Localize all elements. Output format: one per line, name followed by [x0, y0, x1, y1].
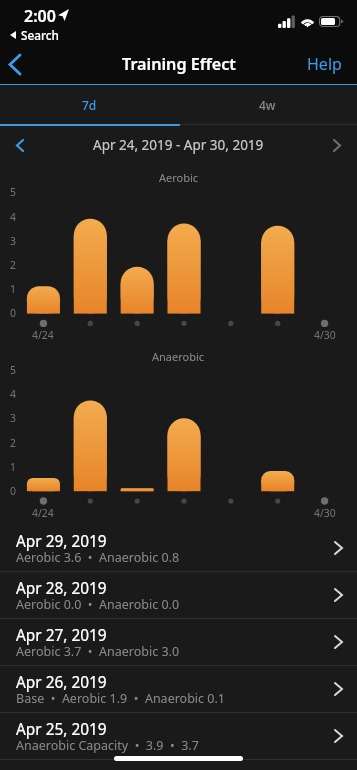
- staticText: 2:00: [24, 5, 56, 27]
- staticText: 4/30: [314, 506, 336, 520]
- staticText: 4/30: [314, 328, 336, 342]
- staticText: 4: [10, 210, 16, 224]
- staticText: Search: [21, 27, 59, 43]
- staticText: 4w: [259, 97, 276, 113]
- staticText: Apr 25, 2019: [16, 719, 107, 740]
- staticText: Aerobic 3.7 • Anaerobic 3.0: [16, 643, 180, 660]
- staticText: 2: [10, 258, 16, 272]
- staticText: Base • Aerobic 1.9 • Anaerobic 0.1: [16, 690, 225, 707]
- staticText: Apr 29, 2019: [16, 531, 107, 552]
- staticText: Training Effect: [122, 53, 236, 75]
- staticText: Help: [307, 53, 342, 75]
- staticText: Apr 28, 2019: [16, 578, 107, 599]
- button[interactable]: Apr 26, 2019: [0, 666, 357, 713]
- staticText: 1: [10, 282, 16, 296]
- button[interactable]: Back: [0, 44, 44, 84]
- staticText: Aerobic: [159, 170, 199, 185]
- staticText: 2: [10, 436, 16, 450]
- button[interactable]: Next week: [317, 133, 357, 157]
- staticText: 5: [10, 363, 16, 377]
- staticText: Anaerobic Capacity • 3.9 • 3.7: [16, 737, 199, 754]
- staticText: Aerobic 3.6 • Anaerobic 0.8: [16, 549, 180, 566]
- staticText: 1: [10, 460, 16, 474]
- button[interactable]: Previous week: [0, 133, 40, 157]
- button[interactable]: Apr 29, 2019: [0, 525, 357, 572]
- button[interactable]: Apr 27, 2019: [0, 619, 357, 666]
- staticText: 0: [10, 484, 16, 498]
- staticText: Apr 26, 2019: [16, 672, 107, 693]
- staticText: 0: [10, 306, 16, 320]
- button[interactable]: Apr 28, 2019: [0, 572, 357, 619]
- button[interactable]: Apr 25, 2019: [0, 713, 357, 760]
- staticText: 4: [10, 387, 16, 401]
- staticText: 4/24: [32, 328, 54, 342]
- staticText: 4/24: [32, 506, 54, 520]
- button[interactable]: Help: [291, 44, 357, 84]
- staticText: Anaerobic: [152, 349, 205, 364]
- staticText: Apr 27, 2019: [16, 625, 107, 646]
- staticText: Apr 24, 2019 - Apr 30, 2019: [93, 136, 264, 154]
- staticText: Aerobic 0.0 • Anaerobic 0.0: [16, 596, 180, 613]
- staticText: 7d: [82, 97, 97, 113]
- staticText: 5: [10, 185, 16, 199]
- button[interactable]: 4w: [178, 85, 357, 124]
- staticText: 3: [10, 234, 16, 248]
- staticText: 3: [10, 411, 16, 425]
- button[interactable]: 7d: [0, 85, 178, 124]
